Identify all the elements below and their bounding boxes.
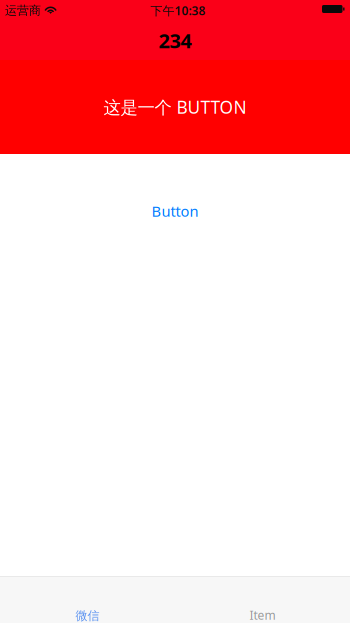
button[interactable]: Item: [175, 576, 350, 623]
staticText: Item: [249, 607, 275, 623]
staticText: 下午10:38: [150, 2, 205, 18]
staticText: 运营商: [5, 3, 41, 18]
staticText: Button: [151, 201, 198, 221]
staticText: 234: [158, 27, 191, 54]
staticText: 微信: [75, 608, 99, 623]
button[interactable]: 这是一个 BUTTON: [0, 60, 350, 154]
staticText: 这是一个 BUTTON: [103, 95, 246, 118]
button[interactable]: Button: [0, 200, 350, 222]
button[interactable]: 微信: [0, 576, 175, 623]
